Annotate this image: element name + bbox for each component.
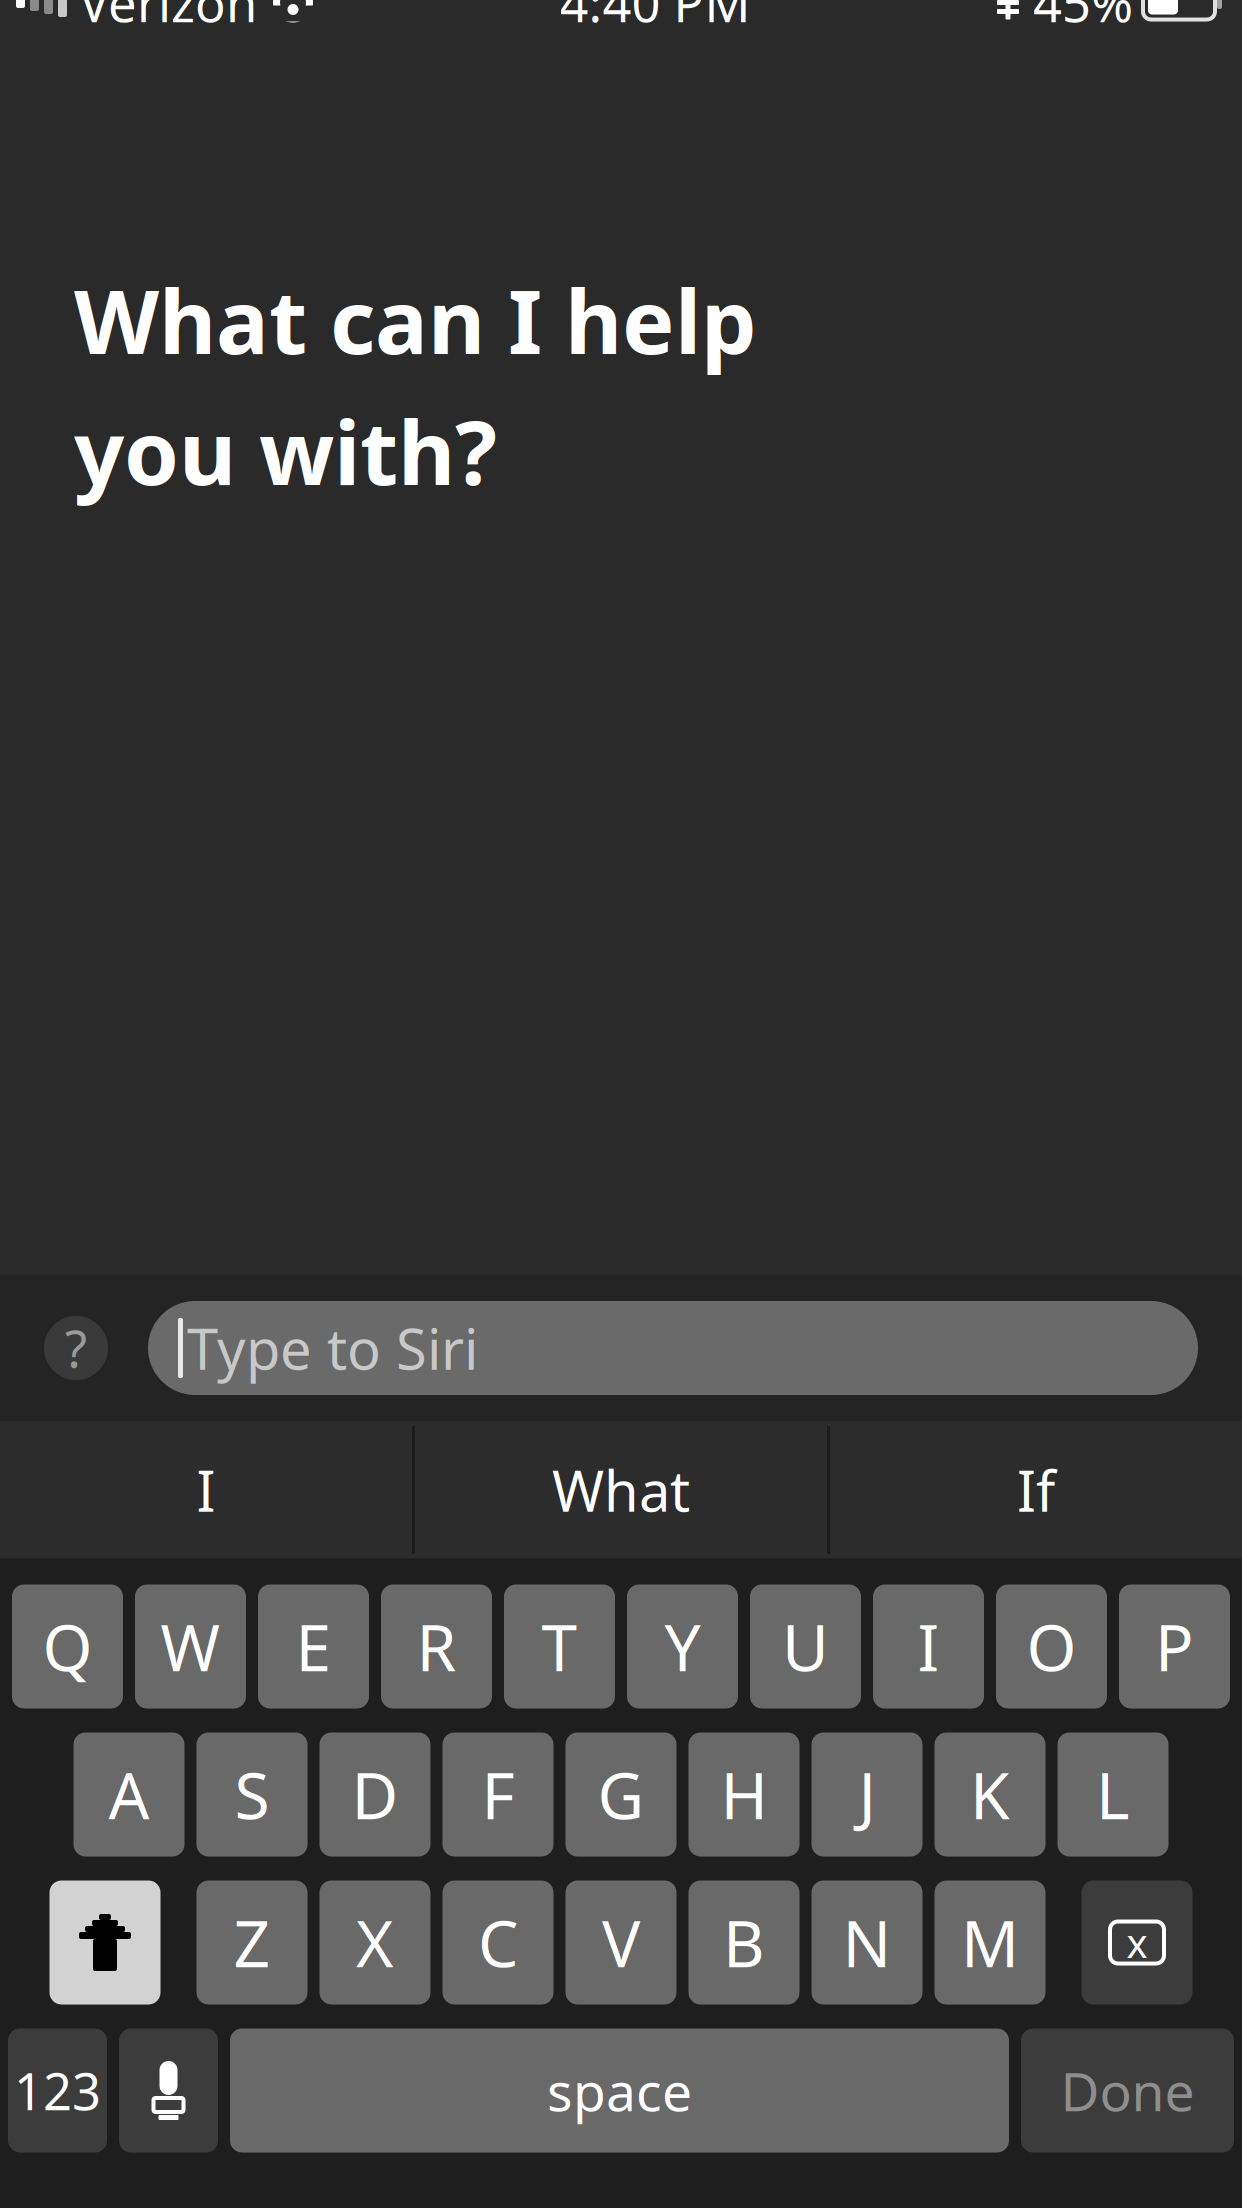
staticText: Done	[1060, 2055, 1194, 2126]
staticText: F	[481, 1752, 514, 1837]
staticText: V	[602, 1900, 640, 1985]
staticText: What	[552, 1453, 690, 1527]
staticText: B	[723, 1900, 765, 1985]
staticText: J	[858, 1752, 875, 1837]
staticText: I	[917, 1604, 939, 1689]
button[interactable]: Q	[12, 1584, 123, 1708]
button[interactable]: N	[811, 1880, 922, 2004]
button[interactable]: S	[196, 1732, 307, 1856]
button[interactable]: C	[442, 1880, 553, 2004]
staticText: M	[961, 1900, 1019, 1985]
button[interactable]: Type to Siri	[148, 1301, 1198, 1395]
staticText: x	[1126, 1916, 1147, 1969]
button[interactable]: X	[319, 1880, 430, 2004]
staticText: P	[1155, 1604, 1194, 1689]
staticText: O	[1026, 1604, 1076, 1689]
staticText: I	[196, 1453, 215, 1527]
button[interactable]: What	[415, 1421, 827, 1558]
button[interactable]: G	[565, 1732, 676, 1856]
staticText: H	[720, 1752, 767, 1837]
staticText: K	[970, 1752, 1010, 1837]
button[interactable]: T	[504, 1584, 615, 1708]
staticText: What can I help	[74, 261, 757, 378]
staticText: Q	[42, 1604, 92, 1689]
button[interactable]: R	[381, 1584, 492, 1708]
button[interactable]: L	[1057, 1732, 1168, 1856]
button[interactable]: J	[811, 1732, 922, 1856]
button[interactable]: I	[0, 1421, 412, 1558]
button[interactable]: Done	[1021, 2028, 1234, 2152]
staticText: D	[351, 1752, 398, 1837]
button[interactable]: F	[442, 1732, 553, 1856]
button[interactable]: Siri help	[44, 1316, 108, 1380]
staticText: T	[541, 1604, 577, 1689]
button[interactable]: H	[688, 1732, 799, 1856]
staticText: E	[295, 1604, 331, 1689]
staticText: C	[478, 1900, 518, 1985]
button[interactable]: K	[934, 1732, 1045, 1856]
staticText: Verizon	[79, 0, 257, 36]
staticText: Type to Siri	[187, 1311, 478, 1385]
staticText: N	[842, 1900, 891, 1985]
staticText: 123	[14, 2057, 101, 2124]
staticText: S	[234, 1752, 269, 1837]
button[interactable]: M	[934, 1880, 1045, 2004]
staticText: Z	[233, 1900, 270, 1985]
button[interactable]: I	[873, 1584, 984, 1708]
staticText: W	[160, 1604, 220, 1689]
button[interactable]: V	[565, 1880, 676, 2004]
button[interactable]: Delete	[1081, 1880, 1192, 2004]
staticText: If	[1017, 1453, 1055, 1527]
button[interactable]: Shift	[49, 1880, 160, 2004]
button[interactable]: If	[830, 1421, 1242, 1558]
button[interactable]: U	[750, 1584, 861, 1708]
staticText: 4:40 PM	[559, 0, 750, 36]
staticText: you with?	[74, 392, 497, 509]
button[interactable]: E	[258, 1584, 369, 1708]
button[interactable]: W	[135, 1584, 246, 1708]
staticText: L	[1096, 1752, 1130, 1837]
staticText: A	[108, 1752, 149, 1837]
button[interactable]: 123	[8, 2028, 107, 2152]
staticText: 45%	[1033, 0, 1133, 36]
staticText: R	[416, 1604, 456, 1689]
button[interactable]: Dictation	[119, 2028, 218, 2152]
staticText: G	[597, 1752, 644, 1837]
button[interactable]: B	[688, 1880, 799, 2004]
button[interactable]: Y	[627, 1584, 738, 1708]
staticText: ?	[65, 1314, 87, 1382]
staticText: U	[782, 1604, 829, 1689]
button[interactable]: Z	[196, 1880, 307, 2004]
staticText: Y	[664, 1604, 700, 1689]
button[interactable]: O	[996, 1584, 1107, 1708]
button[interactable]: A	[73, 1732, 184, 1856]
staticText: X	[356, 1900, 394, 1985]
button[interactable]: P	[1119, 1584, 1230, 1708]
staticText: space	[547, 2055, 692, 2126]
button[interactable]: space	[230, 2028, 1009, 2152]
button[interactable]: D	[319, 1732, 430, 1856]
